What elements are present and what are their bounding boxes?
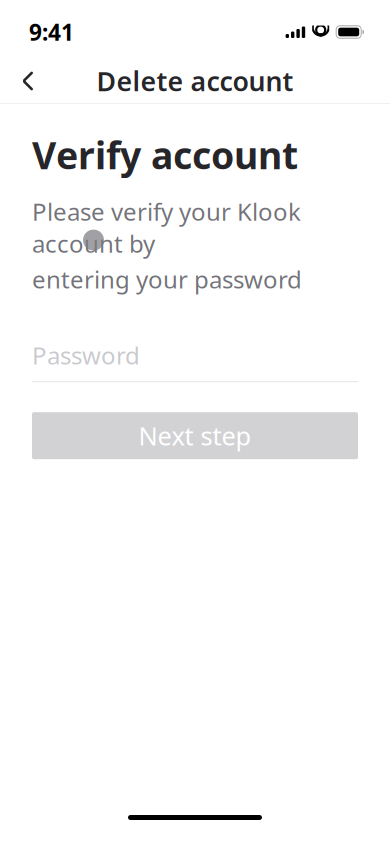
button[interactable]: Next step <box>32 412 358 459</box>
staticText: entering your password <box>32 263 302 295</box>
staticText: 9:41 <box>29 17 74 47</box>
staticText: Next step <box>138 419 251 452</box>
staticText: Please verify your Klook account by <box>32 196 301 259</box>
staticText: Verify account <box>32 130 298 180</box>
staticText: Password <box>32 339 140 371</box>
staticText: Delete account <box>96 63 293 99</box>
button[interactable]: Back <box>6 59 50 103</box>
